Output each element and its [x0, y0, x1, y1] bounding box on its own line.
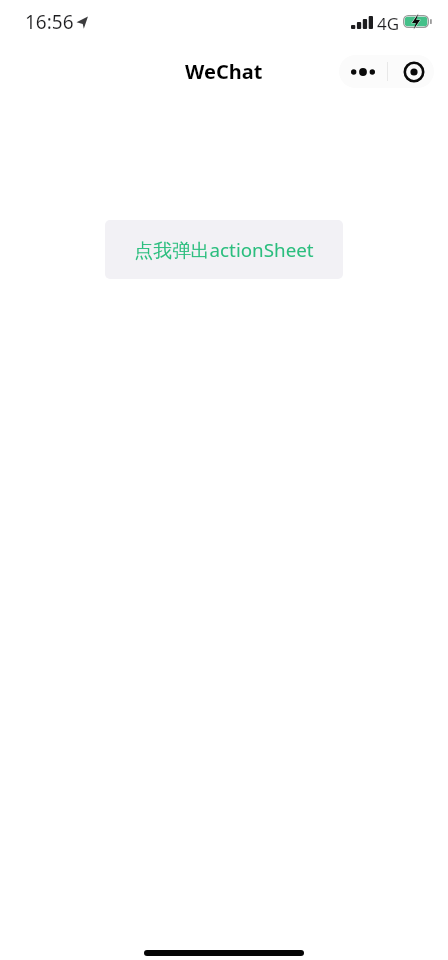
staticText: 4G [377, 12, 400, 35]
button[interactable]: Close mini program [388, 55, 434, 88]
button[interactable]: 点我弹出actionSheet [105, 220, 343, 279]
staticText: 点我弹出actionSheet [134, 237, 314, 263]
button[interactable]: More options [339, 55, 387, 88]
staticText: 16:56 [25, 9, 74, 35]
staticText: WeChat [185, 58, 263, 85]
